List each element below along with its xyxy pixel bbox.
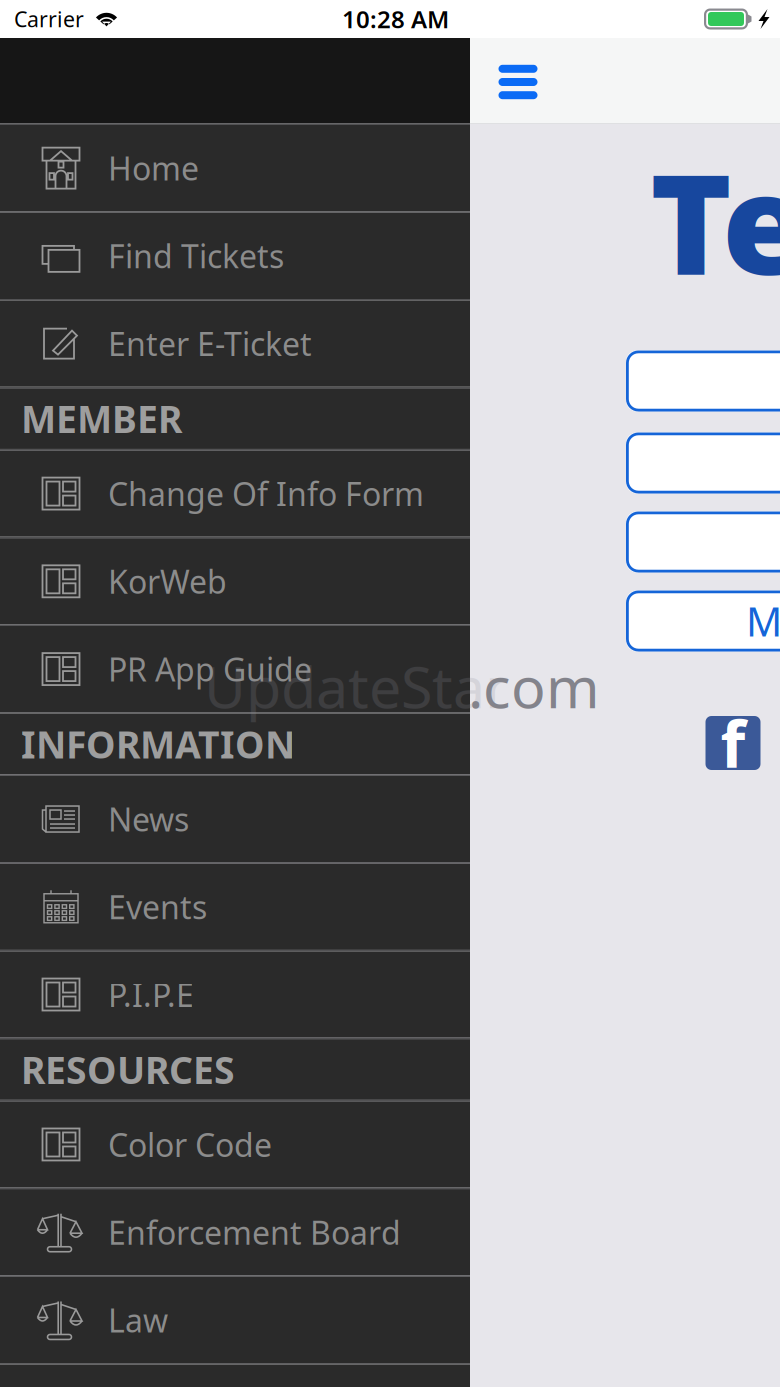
button[interactable]: Color Code — [0, 1101, 470, 1187]
button[interactable]: M — [626, 590, 780, 651]
button[interactable]: KorWeb — [0, 538, 470, 624]
button[interactable]: Text field — [626, 511, 780, 572]
staticText: PR App Guide — [108, 648, 312, 690]
button[interactable]: P.I.P.E — [0, 951, 470, 1038]
button[interactable]: Facebook — [705, 716, 760, 770]
button[interactable]: News — [0, 776, 470, 862]
button[interactable]: Menu — [479, 46, 557, 118]
staticText: Carrier — [14, 5, 84, 33]
button[interactable]: Home — [0, 125, 470, 211]
staticText: INFORMATION — [21, 719, 295, 769]
staticText: Enforcement Board — [108, 1211, 401, 1253]
staticText: News — [108, 798, 189, 840]
button[interactable]: Text field — [626, 432, 780, 493]
staticText: MEMBER — [21, 394, 182, 443]
staticText: Law — [108, 1299, 168, 1341]
button[interactable]: Events — [0, 864, 470, 950]
button[interactable]: Law — [0, 1277, 470, 1363]
button[interactable]: PR App Guide — [0, 626, 470, 712]
button[interactable]: Text field — [626, 350, 780, 411]
button[interactable]: Enter E-Ticket — [0, 300, 470, 387]
staticText: KorWeb — [108, 560, 227, 603]
button[interactable]: Enforcement Board — [0, 1189, 470, 1275]
staticText: Find Tickets — [108, 235, 284, 277]
staticText: Change Of Info Form — [108, 472, 424, 515]
staticText: Tennessee — [650, 129, 780, 313]
staticText: UpdateStar — [204, 648, 509, 724]
staticText: P.I.P.E — [108, 973, 194, 1016]
staticText: f — [720, 700, 745, 785]
staticText: 10:28 AM — [342, 3, 449, 35]
button[interactable]: Change Of Info Form — [0, 450, 470, 537]
staticText: Enter E-Ticket — [108, 322, 312, 365]
staticText: Events — [108, 885, 207, 928]
staticText: Home — [108, 147, 199, 189]
staticText: M — [746, 594, 780, 647]
button[interactable]: Find Tickets — [0, 213, 470, 299]
staticText: Color Code — [108, 1123, 272, 1166]
staticText: RESOURCES — [21, 1045, 235, 1094]
staticText: .com — [468, 648, 600, 724]
